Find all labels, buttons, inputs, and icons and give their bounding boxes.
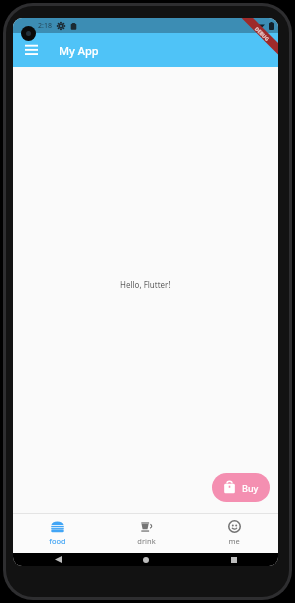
staticText: 2:18 xyxy=(38,21,52,31)
button[interactable]: drink xyxy=(102,513,190,553)
staticText: Hello, Flutter! xyxy=(120,279,171,290)
button[interactable]: Home xyxy=(139,553,153,566)
staticText: me xyxy=(228,536,240,546)
button[interactable]: Back xyxy=(51,553,65,566)
button[interactable]: food xyxy=(13,513,102,553)
button[interactable]: Buy xyxy=(212,473,270,502)
staticText: DEBUG xyxy=(253,26,271,43)
staticText: Buy xyxy=(242,482,259,494)
button[interactable]: Open navigation menu xyxy=(20,39,42,61)
button[interactable]: Recent apps xyxy=(227,553,241,566)
button[interactable]: me xyxy=(190,513,278,553)
staticText: drink xyxy=(137,536,156,546)
staticText: My App xyxy=(59,43,99,58)
staticText: food xyxy=(49,536,66,546)
